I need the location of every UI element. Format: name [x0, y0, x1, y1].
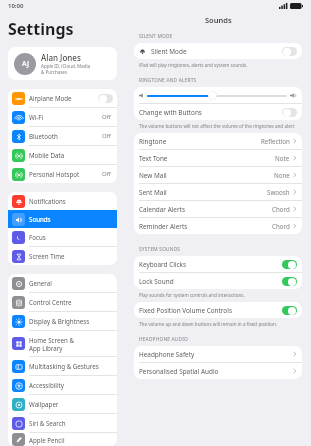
- button[interactable]: Airplane Mode: [8, 89, 117, 107]
- button[interactable]: Headphone Safety: [134, 346, 302, 362]
- staticText: Fixed Position Volume Controls: [139, 306, 232, 315]
- staticText: Headphone Safety: [139, 350, 195, 359]
- staticText: Multitasking & Gestures: [29, 362, 99, 370]
- staticText: 10:00: [8, 2, 24, 10]
- staticText: Control Centre: [29, 298, 72, 306]
- staticText: Personal Hotspot: [29, 170, 80, 178]
- staticText: Text Tone: [139, 154, 168, 163]
- button[interactable]: Toggle: [282, 306, 297, 315]
- button[interactable]: Silent Mode: [134, 43, 302, 59]
- staticText: AJ: [22, 59, 29, 69]
- button[interactable]: General: [8, 274, 117, 292]
- button[interactable]: New Mail: [134, 167, 302, 183]
- button[interactable]: Calendar Alerts: [134, 201, 302, 217]
- button[interactable]: Toggle: [282, 108, 297, 117]
- button[interactable]: Mobile Data: [8, 146, 117, 164]
- staticText: Siri & Search: [29, 419, 66, 427]
- staticText: Swoosh: [267, 188, 290, 196]
- staticText: Note: [275, 154, 290, 162]
- button[interactable]: Keyboard Clicks: [134, 256, 302, 272]
- button[interactable]: Accessibility: [8, 376, 117, 394]
- button[interactable]: Sounds: [8, 210, 117, 228]
- staticText: Calendar Alerts: [139, 205, 185, 214]
- staticText: HEADPHONE AUDIO: [139, 336, 188, 343]
- staticText: Bluetooth: [29, 132, 58, 140]
- button[interactable]: Wi-Fi: [8, 108, 117, 126]
- button[interactable]: Notifications: [8, 192, 117, 210]
- staticText: Keyboard Clicks: [139, 260, 187, 269]
- button[interactable]: Personal Hotspot: [8, 165, 117, 183]
- staticText: iPad will play ringtones, alerts and sys…: [139, 62, 248, 68]
- button[interactable]: Toggle: [282, 47, 297, 56]
- staticText: Reflection: [261, 137, 290, 145]
- staticText: Off: [102, 170, 111, 178]
- staticText: Ringtone: [139, 137, 167, 146]
- staticText: None: [274, 171, 290, 179]
- button[interactable]: Control Centre: [8, 293, 117, 311]
- staticText: Airplane Mode: [29, 94, 72, 102]
- staticText: The volume up and down buttons will rema…: [139, 321, 278, 327]
- button[interactable]: Sent Mail: [134, 184, 302, 200]
- staticText: Play sounds for system controls and inte…: [139, 292, 245, 298]
- staticText: SYSTEM SOUNDS: [139, 246, 181, 253]
- staticText: Wi-Fi: [29, 113, 44, 121]
- staticText: Lock Sound: [139, 277, 174, 286]
- button[interactable]: Wallpaper: [8, 395, 117, 413]
- staticText: App Library: [29, 344, 63, 352]
- staticText: Off: [102, 113, 111, 121]
- staticText: General: [29, 279, 52, 287]
- staticText: Notifications: [29, 197, 66, 205]
- button[interactable]: Change with Buttons: [134, 104, 302, 120]
- button[interactable]: Multitasking & Gestures: [8, 357, 117, 375]
- button[interactable]: Toggle: [282, 277, 297, 286]
- staticText: Focus: [29, 233, 46, 241]
- button[interactable]: Bluetooth: [8, 127, 117, 145]
- staticText: Change with Buttons: [139, 108, 202, 117]
- button[interactable]: Home Screen &: [8, 331, 117, 356]
- button[interactable]: Toggle: [98, 94, 113, 103]
- staticText: SILENT MODE: [139, 33, 173, 40]
- staticText: Wallpaper: [29, 400, 59, 408]
- staticText: RINGTONE AND ALERTS: [139, 77, 197, 84]
- button[interactable]: Display & Brightness: [8, 312, 117, 330]
- staticText: Chord: [272, 222, 290, 230]
- button[interactable]: Personalised Spatial Audio: [134, 363, 302, 379]
- staticText: Home Screen &: [29, 336, 74, 344]
- staticText: Personalised Spatial Audio: [139, 367, 219, 376]
- staticText: Off: [102, 132, 111, 140]
- staticText: Mobile Data: [29, 151, 65, 159]
- staticText: Reminder Alerts: [139, 222, 188, 231]
- staticText: Display & Brightness: [29, 317, 90, 325]
- staticText: Screen Time: [29, 252, 65, 260]
- button[interactable]: Apple Pencil: [8, 433, 117, 446]
- button[interactable]: Siri & Search: [8, 414, 117, 432]
- staticText: Silent Mode: [151, 47, 187, 56]
- button[interactable]: Fixed Position Volume Controls: [134, 302, 302, 318]
- button[interactable]: Ringtone: [134, 133, 302, 149]
- staticText: Apple ID, iCloud, Media & Purchases: [41, 63, 91, 75]
- button[interactable]: Toggle: [282, 260, 297, 269]
- staticText: New Mail: [139, 171, 167, 180]
- button[interactable]: Reminder Alerts: [134, 218, 302, 234]
- staticText: Apple Pencil: [29, 436, 65, 444]
- staticText: Sent Mail: [139, 188, 167, 197]
- staticText: Chord: [272, 205, 290, 213]
- staticText: The volume buttons will not affect the v…: [139, 123, 295, 129]
- staticText: Sounds: [205, 15, 232, 25]
- staticText: Alan Jones: [41, 52, 81, 63]
- button[interactable]: Lock Sound: [134, 273, 302, 289]
- staticText: Settings: [8, 18, 74, 40]
- staticText: Sounds: [29, 215, 51, 223]
- button[interactable]: AJ: [8, 47, 117, 80]
- staticText: Accessibility: [29, 381, 64, 389]
- button[interactable]: Screen Time: [8, 247, 117, 265]
- button[interactable]: Text Tone: [134, 150, 302, 166]
- button[interactable]: Focus: [8, 228, 117, 246]
